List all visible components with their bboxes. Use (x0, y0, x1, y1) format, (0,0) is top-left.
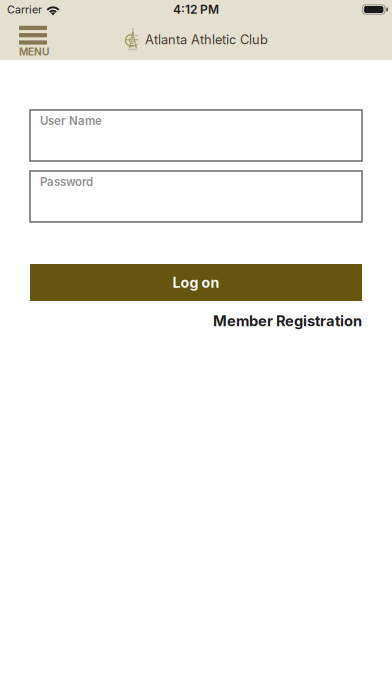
staticText: Atlanta Athletic Club (145, 32, 268, 47)
staticText: 4:12 PM (173, 2, 219, 17)
button[interactable]: Password (30, 171, 362, 222)
button[interactable]: Log on (30, 264, 362, 301)
staticText: Member Registration (213, 312, 362, 330)
staticText: Log on (172, 274, 219, 291)
staticText: MENU (19, 46, 49, 58)
button[interactable]: Menu (0, 19, 51, 60)
staticText: Carrier (7, 3, 42, 16)
button[interactable]: User Name (30, 110, 362, 161)
staticText: User Name (40, 114, 102, 128)
staticText: Password (40, 175, 93, 189)
button[interactable]: Member Registration (213, 310, 362, 332)
